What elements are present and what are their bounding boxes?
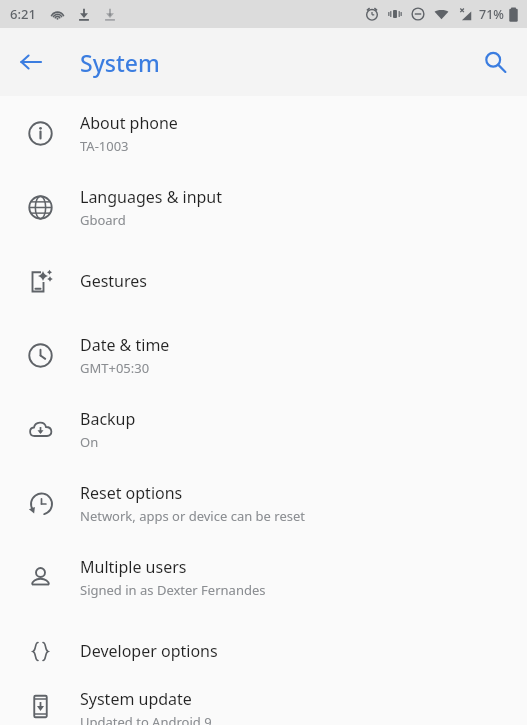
button[interactable]: Search <box>473 40 517 84</box>
button[interactable]: Backup <box>0 392 527 466</box>
button[interactable]: System update <box>0 688 527 725</box>
button[interactable]: Reset options <box>0 466 527 540</box>
staticText: Signed in as Dexter Fernandes <box>80 581 266 599</box>
button[interactable]: About phone <box>0 96 527 170</box>
staticText: Backup <box>80 408 136 430</box>
staticText: About phone <box>80 112 178 134</box>
staticText: Network, apps or device can be reset <box>80 507 305 525</box>
button[interactable]: Multiple users <box>0 540 527 614</box>
staticText: Gboard <box>80 211 126 229</box>
staticText: System update <box>80 688 192 710</box>
staticText: System <box>80 47 160 78</box>
staticText: Languages & input <box>80 186 223 208</box>
staticText: Multiple users <box>80 556 187 578</box>
button[interactable]: Gestures <box>0 244 527 318</box>
staticText: Developer options <box>80 640 218 662</box>
staticText: 6:21 <box>10 5 36 23</box>
button[interactable]: Developer options <box>0 614 527 688</box>
button[interactable]: Languages & input <box>0 170 527 244</box>
staticText: TA-1003 <box>80 137 129 155</box>
staticText: GMT+05:30 <box>80 359 150 377</box>
staticText: Date & time <box>80 334 170 356</box>
staticText: On <box>80 433 99 451</box>
button[interactable]: Date & time <box>0 318 527 392</box>
staticText: Updated to Android 9 <box>80 713 212 725</box>
button[interactable]: Back <box>9 40 53 84</box>
staticText: Reset options <box>80 482 183 504</box>
staticText: 71% <box>479 6 504 23</box>
staticText: Gestures <box>80 270 147 292</box>
